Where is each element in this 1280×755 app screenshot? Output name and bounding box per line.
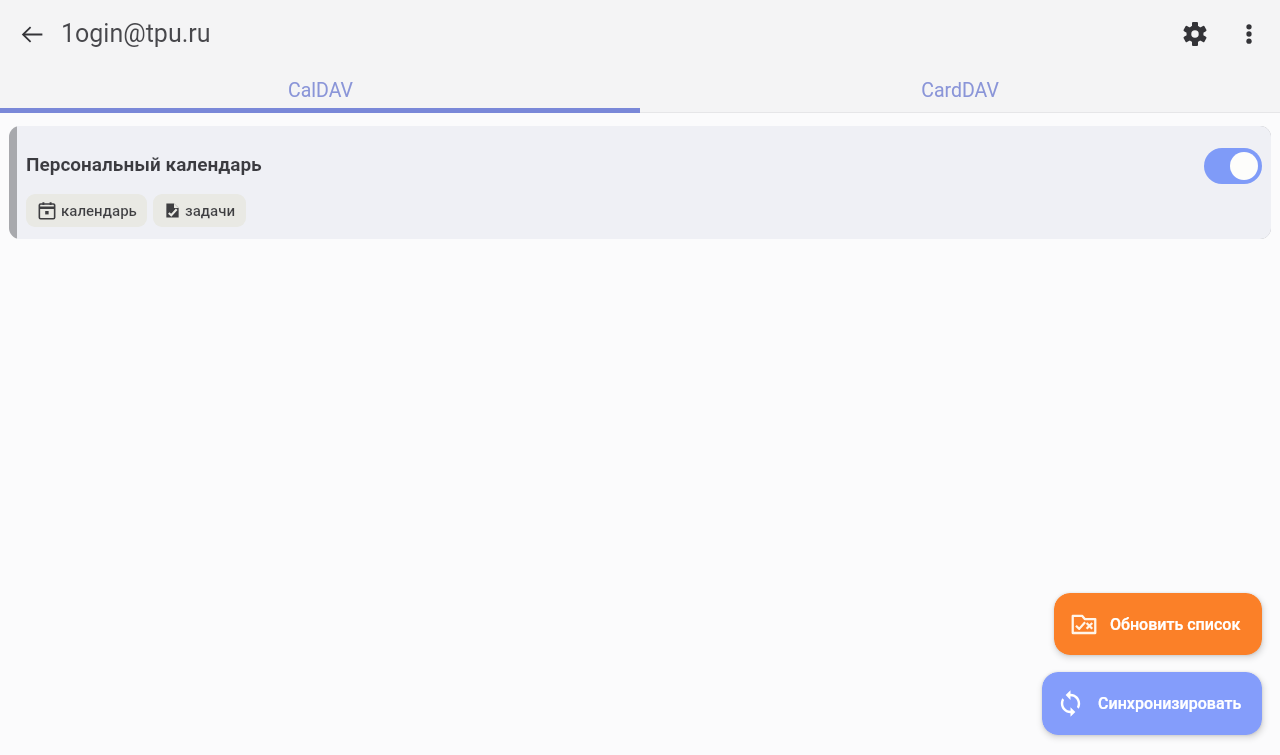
staticText: CalDAV [288,79,353,102]
button[interactable]: Персональный календарь [17,126,1271,239]
button[interactable]: задачи [153,194,246,227]
button[interactable]: календарь [26,194,147,227]
staticText: календарь [61,202,137,220]
staticText: задачи [185,202,236,220]
button[interactable]: Settings [1173,12,1217,56]
button[interactable]: CardDAV [640,67,1280,113]
button[interactable]: CalDAV [0,67,640,113]
button[interactable]: Обновить список [1054,593,1262,655]
button[interactable]: Back [10,12,54,56]
button[interactable]: Синхронизировать [1042,672,1262,735]
staticText: Обновить список [1110,615,1241,634]
staticText: CardDAV [921,79,999,102]
staticText: 1ogin@tpu.ru [61,19,211,48]
button[interactable]: Toggle collection [1204,148,1262,184]
button[interactable]: More options [1227,12,1271,56]
staticText: Персональный календарь [26,153,262,175]
staticText: Синхронизировать [1098,694,1242,713]
